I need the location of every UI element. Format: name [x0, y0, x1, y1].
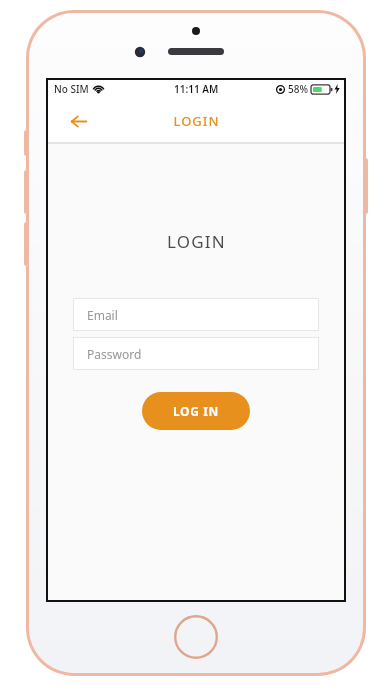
staticText: 58% — [288, 82, 308, 96]
staticText: LOGIN — [173, 112, 220, 130]
staticText: LOGIN — [167, 230, 226, 253]
staticText: 11:11 AM — [174, 82, 219, 96]
button[interactable]: Email — [73, 298, 319, 331]
staticText: Password — [87, 346, 142, 362]
button[interactable]: Password — [73, 337, 319, 370]
staticText: No SIM — [54, 82, 89, 96]
staticText: LOG IN — [173, 403, 219, 419]
staticText: Email — [87, 307, 118, 323]
button[interactable]: Back — [64, 107, 92, 135]
button[interactable]: LOG IN — [142, 392, 250, 430]
